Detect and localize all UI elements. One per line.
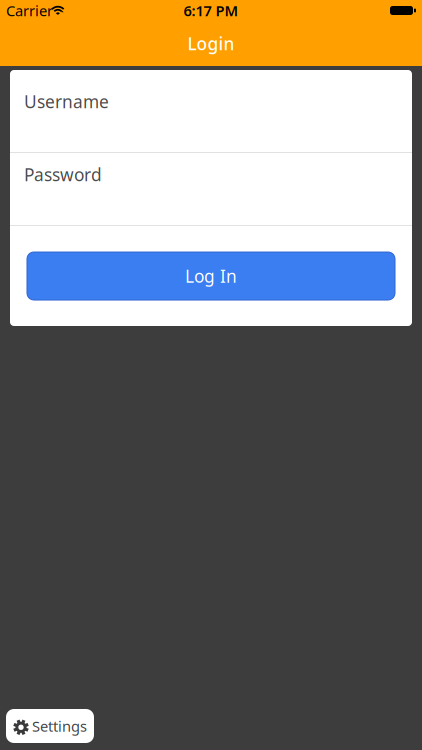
staticText: 6:17 PM [183,1,238,20]
button[interactable]: Settings [6,709,94,743]
staticText: Carrier [6,1,53,20]
staticText: Settings [32,716,87,736]
staticText: Username [24,90,109,113]
button[interactable]: Log In [27,252,395,300]
button[interactable]: Password [10,153,412,225]
staticText: Log In [185,264,237,287]
staticText: Password [24,163,102,186]
staticText: Login [187,32,234,55]
button[interactable]: Username [10,70,412,152]
